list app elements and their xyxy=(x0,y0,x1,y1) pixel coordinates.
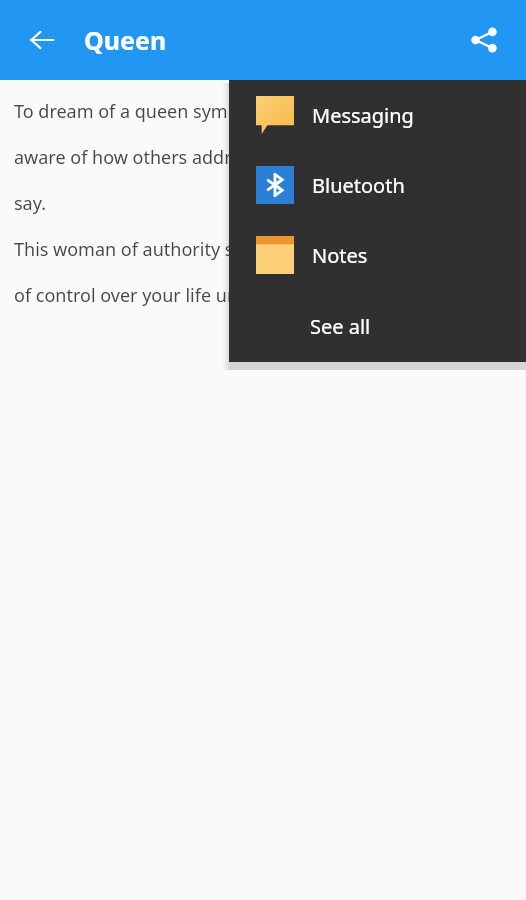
button[interactable]: See all xyxy=(229,290,526,362)
staticText: Messaging xyxy=(312,102,414,129)
staticText: Bluetooth xyxy=(312,172,405,199)
button[interactable]: Messaging xyxy=(229,80,526,150)
staticText: Queen xyxy=(84,23,167,57)
staticText: This woman of authority signals an awake… xyxy=(14,237,518,307)
staticText: See all xyxy=(310,313,371,340)
button[interactable]: Back xyxy=(18,16,66,64)
staticText: To dream of a queen symbolizes a woman w… xyxy=(14,99,518,215)
button[interactable]: Share xyxy=(460,16,508,64)
button[interactable]: Notes xyxy=(229,220,526,290)
staticText: Notes xyxy=(312,242,368,269)
button[interactable]: Bluetooth xyxy=(229,150,526,220)
